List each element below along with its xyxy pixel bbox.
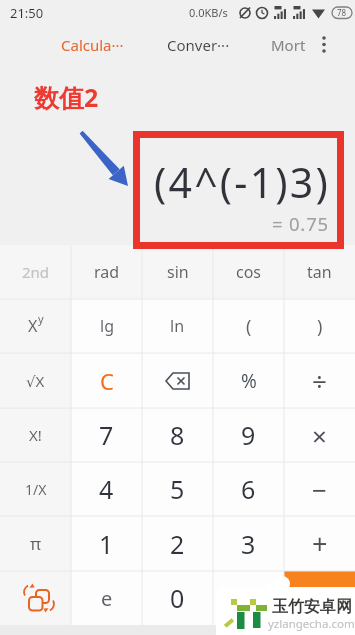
staticText: 1	[99, 527, 114, 561]
button[interactable]: 2	[142, 516, 213, 571]
staticText: 0.0KB/s	[189, 5, 228, 20]
button[interactable]: 0	[142, 571, 213, 625]
button[interactable]: ×	[284, 408, 355, 462]
staticText: .	[245, 581, 252, 615]
button[interactable]: tan	[284, 245, 355, 299]
button[interactable]: 8	[142, 408, 213, 462]
staticText: ln	[170, 315, 185, 337]
staticText: sin	[167, 261, 189, 283]
staticText: tan	[307, 261, 332, 283]
staticText: y	[38, 311, 44, 326]
button[interactable]	[318, 34, 330, 56]
staticText: ÷	[312, 363, 327, 398]
button[interactable]: 3	[213, 516, 284, 571]
button[interactable]: sin	[142, 245, 213, 299]
button[interactable]	[0, 571, 71, 625]
button[interactable]: √X	[0, 353, 71, 408]
staticText: ×	[312, 418, 327, 453]
staticText: e	[101, 585, 113, 612]
button[interactable]: +	[284, 516, 355, 571]
staticText: X	[28, 315, 38, 337]
button[interactable]: X	[0, 299, 71, 353]
button[interactable]: e	[71, 571, 142, 625]
button[interactable]: Conver···	[167, 35, 230, 55]
staticText: 2nd	[22, 262, 50, 282]
staticText: = 0.75	[272, 211, 329, 236]
button[interactable]: 1/X	[0, 462, 71, 516]
staticText: lg	[100, 315, 114, 337]
staticText: X!	[29, 425, 42, 445]
button[interactable]: ÷	[284, 353, 355, 408]
staticText: 数值2	[34, 80, 99, 114]
staticText: 6	[241, 472, 256, 506]
button[interactable]: C	[71, 353, 142, 408]
button[interactable]: 7	[71, 408, 142, 462]
button[interactable]: 2nd	[0, 245, 71, 299]
button[interactable]: %	[213, 353, 284, 408]
staticText: 78	[337, 7, 347, 18]
staticText: Conver···	[167, 35, 230, 55]
staticText: Mort	[271, 35, 306, 55]
staticText: Calcula···	[61, 35, 124, 55]
staticText: 21:50	[10, 4, 44, 22]
button[interactable]: (	[213, 299, 284, 353]
staticText: (4^(-1)3)	[154, 154, 331, 210]
button[interactable]: 1	[71, 516, 142, 571]
button[interactable]: rad	[71, 245, 142, 299]
staticText: (	[246, 314, 252, 339]
staticText: 5	[170, 472, 185, 506]
button[interactable]: −	[284, 462, 355, 516]
staticText: =	[312, 581, 327, 616]
staticText: cos	[236, 261, 262, 283]
staticText: yzlangecha.com	[268, 616, 355, 632]
button[interactable]: 6	[213, 462, 284, 516]
staticText: C	[100, 366, 114, 396]
button[interactable]: cos	[213, 245, 284, 299]
button[interactable]: =	[284, 571, 355, 625]
staticText: 7	[99, 418, 114, 452]
staticText: +	[312, 525, 328, 562]
staticText: rad	[94, 261, 120, 283]
staticText: −	[312, 472, 327, 507]
staticText: √X	[26, 371, 45, 391]
button[interactable]: Mort	[271, 35, 306, 55]
staticText: %	[241, 368, 257, 394]
button[interactable]: 5	[142, 462, 213, 516]
button[interactable]: 4	[71, 462, 142, 516]
staticText: 玉竹安卓网	[272, 597, 352, 617]
staticText: 0	[170, 581, 185, 615]
button[interactable]: Calcula···	[61, 35, 124, 55]
staticText: 9	[241, 418, 256, 452]
staticText: )	[317, 314, 323, 339]
button[interactable]: ln	[142, 299, 213, 353]
button[interactable]: .	[213, 571, 284, 625]
button[interactable]: )	[284, 299, 355, 353]
staticText: π	[30, 532, 42, 555]
button[interactable]: X!	[0, 408, 71, 462]
staticText: 8	[170, 418, 185, 452]
button[interactable]	[142, 353, 213, 408]
button[interactable]: 9	[213, 408, 284, 462]
staticText: 4	[99, 472, 114, 506]
staticText: 1/X	[25, 480, 47, 499]
button[interactable]: π	[0, 516, 71, 571]
button[interactable]: lg	[71, 299, 142, 353]
staticText: 2	[170, 527, 185, 561]
staticText: 3	[241, 527, 256, 561]
